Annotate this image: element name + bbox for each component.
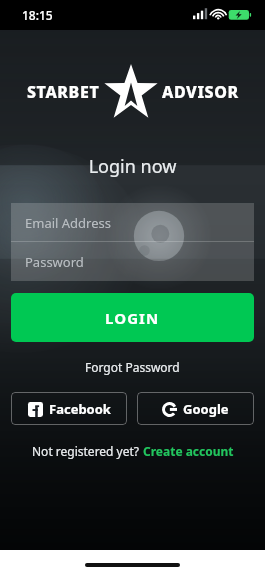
staticText: Forgot Password	[85, 359, 180, 375]
staticText: ADVISOR	[162, 81, 239, 103]
staticText: LOGIN	[105, 308, 160, 328]
staticText: Password	[25, 253, 84, 271]
staticText: STARBET	[27, 81, 100, 103]
button[interactable]: LOGIN	[11, 293, 254, 342]
button[interactable]: Forgot Password	[0, 356, 265, 378]
staticText: Login now	[0, 154, 265, 179]
button[interactable]: Facebook	[11, 392, 127, 425]
staticText: Google	[183, 400, 229, 418]
button[interactable]: Create account	[143, 443, 234, 459]
staticText: Facebook	[49, 400, 111, 418]
staticText: Email Address	[25, 214, 111, 232]
button[interactable]: Password	[11, 242, 254, 281]
button[interactable]: Email Address	[11, 203, 254, 242]
staticText: Not registered yet?	[32, 443, 143, 459]
staticText: Create account	[143, 443, 234, 459]
button[interactable]: Google	[137, 392, 254, 425]
staticText: 18:15	[22, 7, 53, 23]
other: Home indicator	[85, 563, 180, 567]
